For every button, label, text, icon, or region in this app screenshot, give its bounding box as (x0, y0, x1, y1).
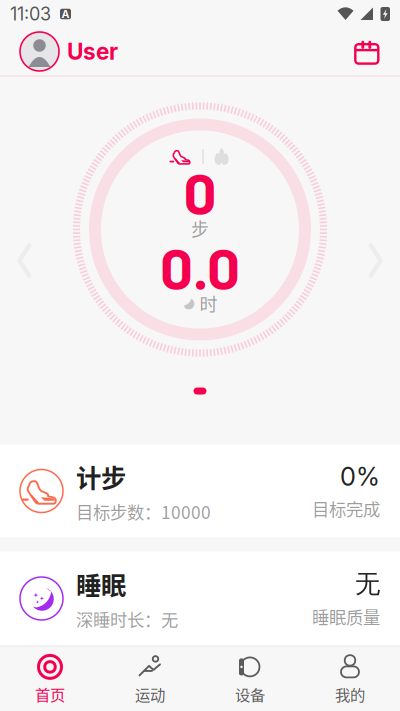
staticText: 无 (355, 568, 380, 600)
staticText: 计步 (76, 458, 126, 495)
staticText: 运动 (135, 683, 165, 705)
button[interactable]: 首页 (0, 646, 100, 710)
staticText: 0% (340, 461, 380, 492)
staticText: 深睡时长：无 (76, 606, 178, 631)
staticText: User (67, 38, 118, 65)
staticText: 0.0 (160, 232, 240, 301)
staticText: 11:03 (10, 3, 51, 25)
staticText: 设备 (235, 683, 265, 705)
staticText: 0 (183, 157, 216, 226)
button[interactable]: 我的 (300, 646, 400, 710)
button[interactable]: User (20, 32, 118, 71)
staticText: 我的 (335, 683, 365, 705)
staticText: A (61, 7, 69, 20)
staticText: 目标完成 (312, 496, 380, 521)
button[interactable]: 计步 (0, 444, 400, 537)
staticText: 步 (191, 215, 209, 242)
button[interactable]: 运动 (100, 646, 200, 710)
staticText: 首页 (35, 683, 65, 705)
staticText: 目标步数：10000 (76, 499, 211, 524)
button[interactable]: Calendar (354, 39, 380, 63)
staticText: 睡眠 (76, 566, 126, 602)
button[interactable]: 设备 (200, 646, 300, 710)
staticText: 睡眠质量 (312, 604, 380, 629)
button[interactable]: 睡眠 (0, 551, 400, 645)
staticText: 时 (199, 290, 217, 317)
